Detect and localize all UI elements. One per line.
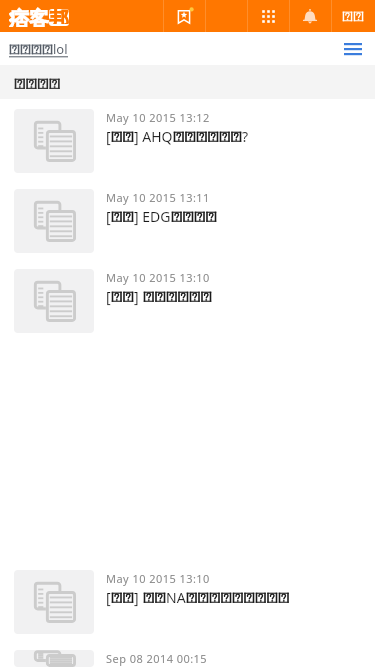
button[interactable]: Sign in [331,0,375,32]
button[interactable]: Notifications [289,0,331,32]
staticText: Sep 08 2014 00:15 [106,651,208,666]
staticText: [ [106,207,111,226]
button[interactable]: lol [9,40,68,58]
staticText: ] [134,588,143,607]
staticText: [ [106,588,111,607]
staticText: [ [106,127,111,146]
button[interactable]: May 10 2015 13:10 [0,570,375,650]
button[interactable]: PIXNET home [9,10,71,30]
staticText: May 10 2015 13:10 [106,571,210,586]
staticText: lol [53,40,68,58]
staticText: ] EDG [134,207,171,226]
staticText: 邦 [49,9,69,24]
staticText: May 10 2015 13:11 [106,190,210,205]
button[interactable]: Menu [331,32,375,65]
staticText: NA [166,588,186,607]
staticText: May 10 2015 13:12 [106,110,210,125]
staticText: ] [134,287,143,306]
button[interactable]: More [205,0,247,32]
button[interactable]: Sep 08 2014 00:15 [0,650,375,667]
button[interactable]: Apps [247,0,289,32]
button[interactable]: Bookmarks [163,0,205,32]
button[interactable]: May 10 2015 13:11 [0,189,375,269]
button[interactable]: May 10 2015 13:12 [0,109,375,189]
staticText: [ [106,287,111,306]
staticText: ? [242,127,249,146]
button[interactable]: May 10 2015 13:10 [0,269,375,349]
staticText: ] AHQ [134,127,173,146]
staticText: 痞客 [9,7,49,27]
staticText: May 10 2015 13:10 [106,270,210,285]
